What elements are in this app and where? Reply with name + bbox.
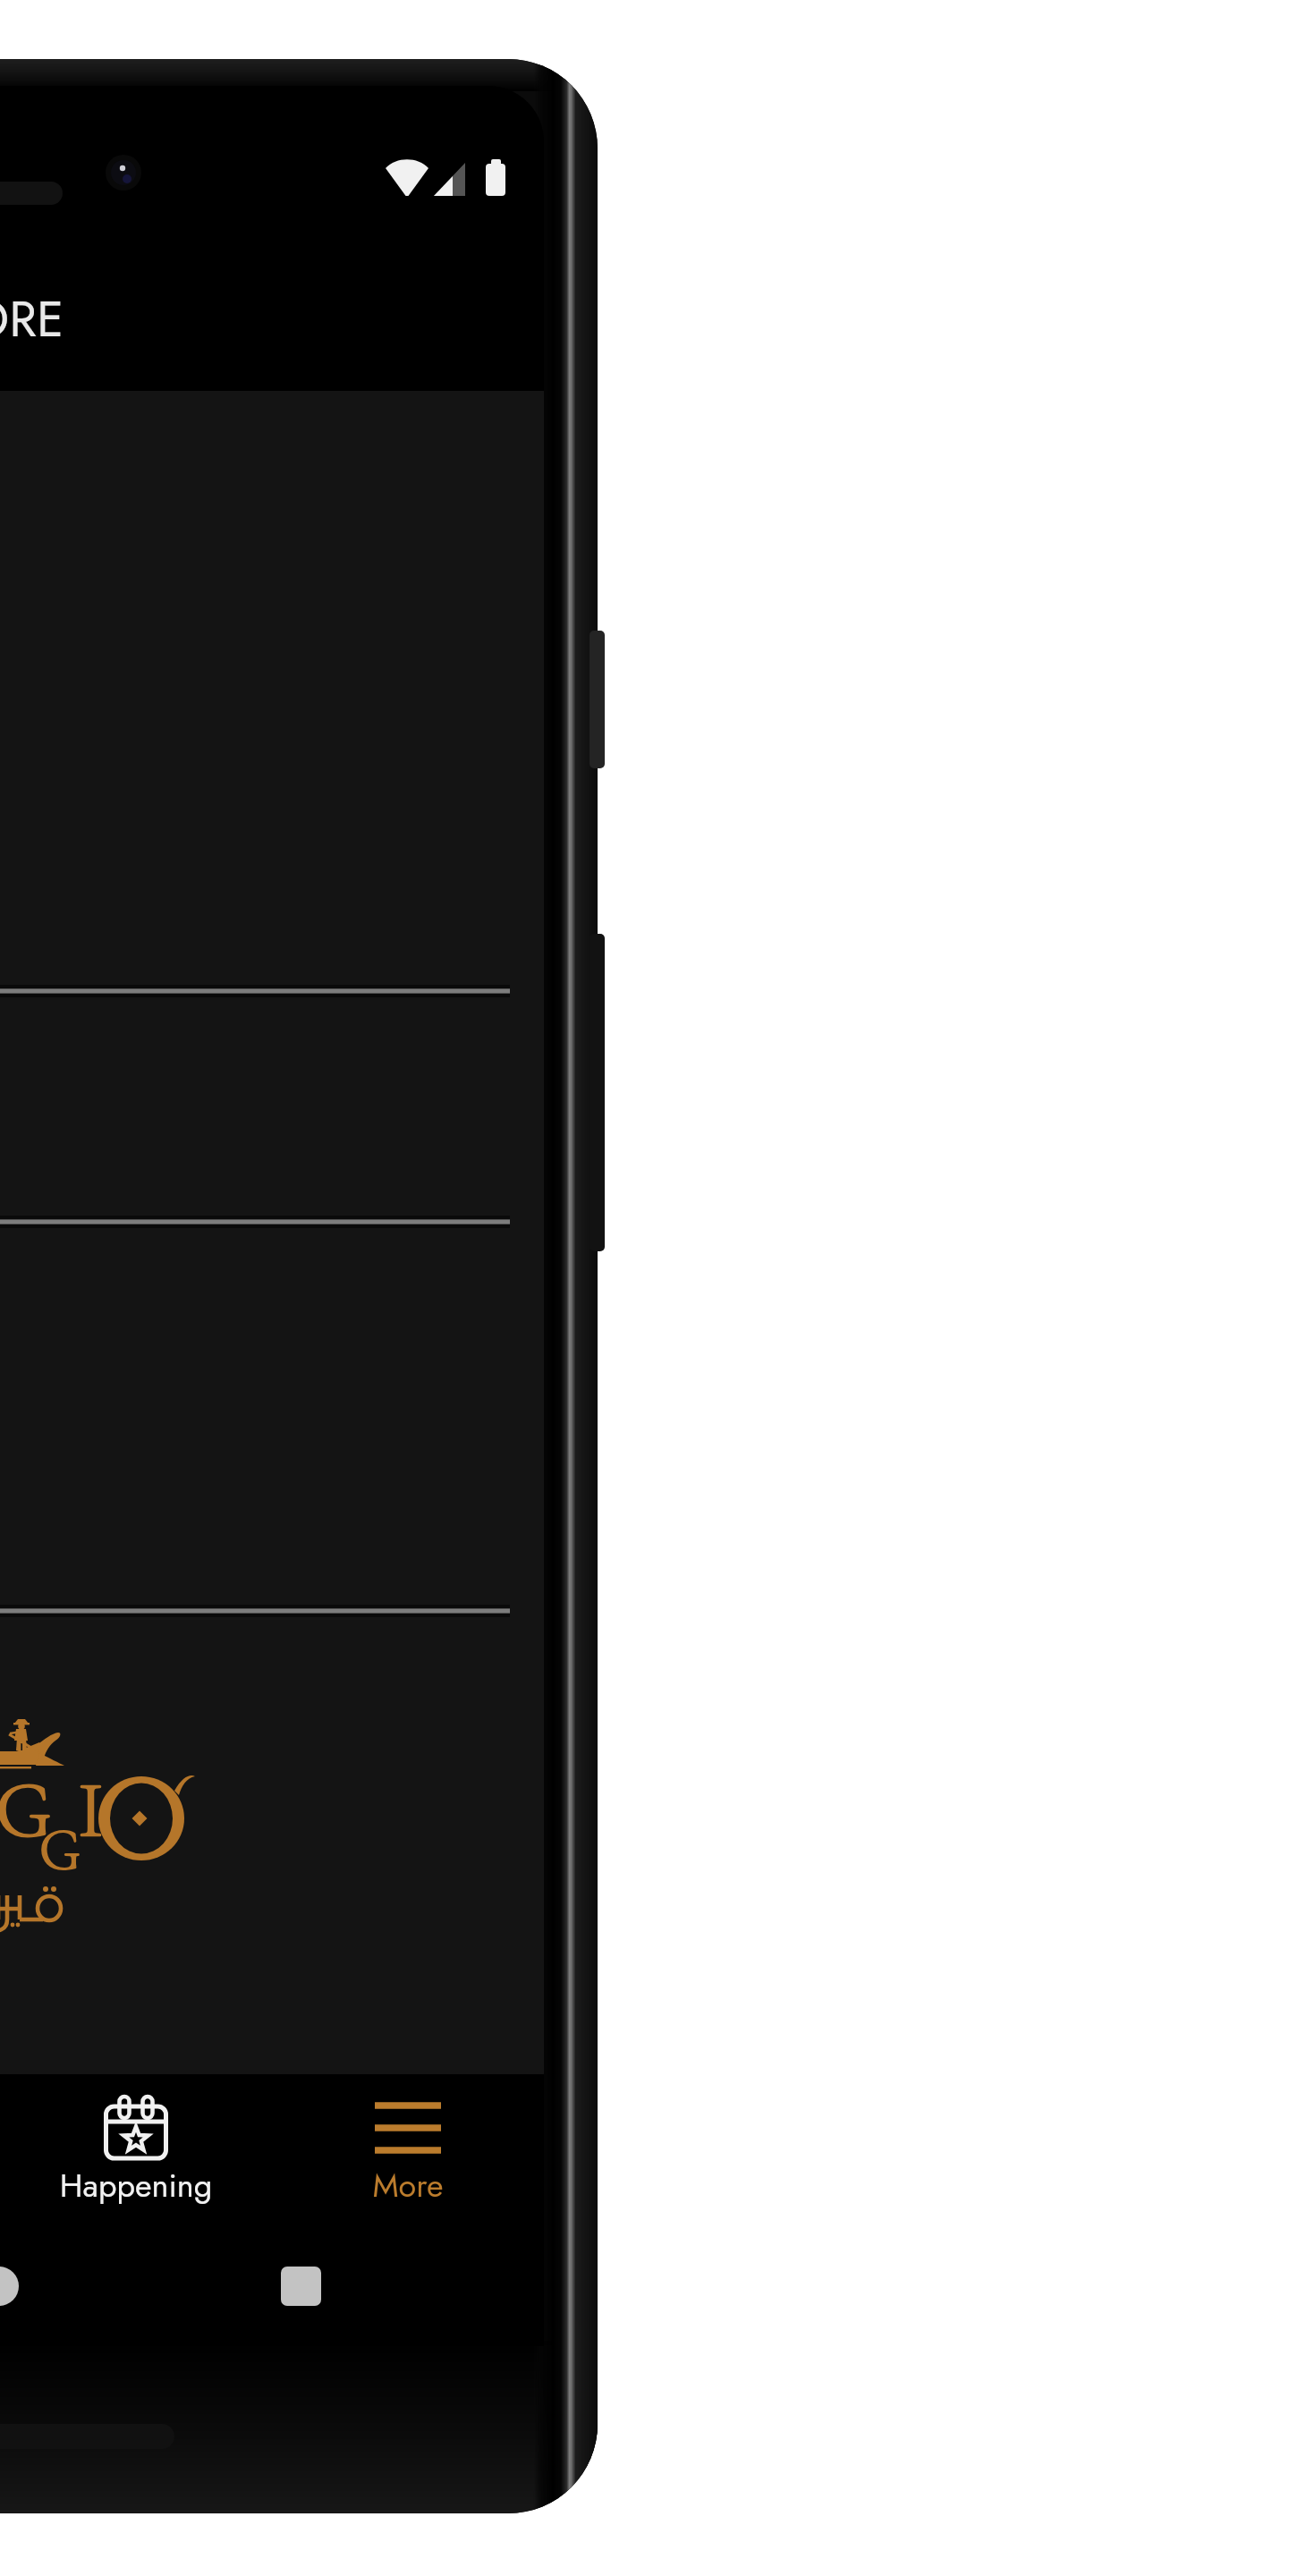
staticText: Happening: [0, 2162, 272, 2208]
button[interactable]: More: [272, 2074, 544, 2222]
button[interactable]: Settings: [0, 1222, 510, 1611]
button[interactable]: Happening: [0, 2074, 272, 2222]
button[interactable]: Recent apps: [278, 2265, 323, 2309]
button[interactable]: Reservations: [0, 991, 510, 1222]
staticText: MORE: [0, 284, 64, 352]
staticText: More: [272, 2162, 544, 2208]
button[interactable]: Home: [0, 2265, 22, 2309]
button[interactable]: Profile: [0, 391, 510, 991]
button[interactable]: MORE: [0, 284, 64, 352]
staticText: G: [39, 1815, 81, 1885]
staticText: I: [78, 1763, 105, 1859]
staticText: AG: [0, 1763, 52, 1859]
